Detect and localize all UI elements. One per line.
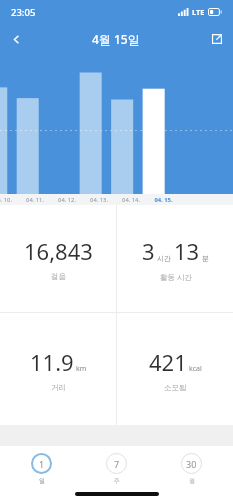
staticText: 04. 13. <box>90 196 108 204</box>
staticText: kcal <box>189 364 202 374</box>
staticText: 분 <box>202 254 209 263</box>
button[interactable]: 11.9 <box>0 313 116 425</box>
staticText: 16,843 <box>24 236 93 266</box>
staticText: 소모됨 <box>164 383 187 392</box>
button[interactable]: Back <box>0 24 32 54</box>
staticText: 421 <box>149 347 187 377</box>
staticText: 거리 <box>51 383 66 392</box>
staticText: 시간 <box>157 254 171 263</box>
staticText: 월 <box>189 477 195 485</box>
button[interactable]: 421 <box>117 313 233 425</box>
staticText: 3 <box>142 236 155 266</box>
button[interactable]: Share <box>201 24 233 54</box>
staticText: 주 <box>114 477 120 485</box>
button[interactable]: 1 <box>22 451 61 487</box>
staticText: 30 <box>186 458 197 470</box>
button[interactable]: 16,843 <box>0 205 116 312</box>
staticText: 활동 시간 <box>160 272 192 282</box>
staticText: 04. 15. <box>154 196 173 204</box>
staticText: 04. 14. <box>122 196 140 204</box>
staticText: 23:05 <box>11 6 36 19</box>
staticText: 일 <box>39 477 45 485</box>
staticText: 7 <box>114 458 120 470</box>
button[interactable]: 7 <box>97 451 136 487</box>
staticText: 04. 12. <box>58 196 76 204</box>
staticText: 04. 10. <box>0 196 12 204</box>
staticText: 13 <box>174 236 200 266</box>
staticText: km <box>76 364 87 374</box>
button[interactable]: 3 <box>117 205 233 312</box>
staticText: 04. 11. <box>26 196 44 204</box>
staticText: LTE <box>192 7 205 17</box>
staticText: 1 <box>39 458 45 470</box>
staticText: 걸음 <box>51 272 66 281</box>
staticText: 11.9 <box>30 347 74 377</box>
button[interactable]: 30 <box>172 451 211 487</box>
staticText: 4월 15일 <box>92 31 140 47</box>
